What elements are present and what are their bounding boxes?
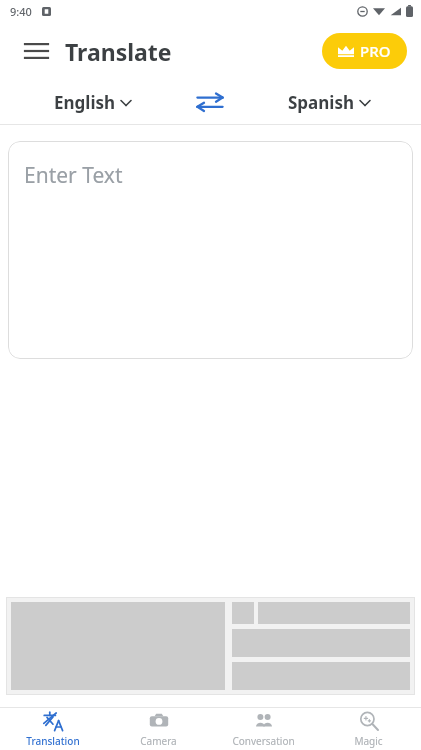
staticText: English — [54, 91, 116, 114]
button[interactable]: Magic — [316, 708, 421, 750]
staticText: Translation — [26, 734, 80, 748]
staticText: Spanish — [288, 91, 355, 114]
staticText: Enter Text — [24, 161, 123, 190]
button[interactable]: Menu — [14, 29, 58, 73]
button[interactable]: Spanish — [282, 87, 376, 118]
staticText: 9:40 — [10, 4, 32, 19]
button[interactable]: Translation — [0, 708, 106, 750]
button[interactable]: Advertisement — [6, 597, 415, 695]
button[interactable]: Swap languages — [184, 80, 236, 124]
staticText: Translate — [65, 36, 172, 67]
staticText: PRO — [360, 41, 391, 61]
button[interactable]: English — [48, 87, 137, 118]
staticText: Camera — [140, 734, 177, 748]
button[interactable]: PRO — [322, 33, 407, 69]
button[interactable]: Conversation — [211, 708, 316, 750]
staticText: Conversation — [232, 734, 295, 748]
button[interactable]: Enter Text — [8, 141, 413, 359]
button[interactable]: Camera — [106, 708, 211, 750]
staticText: Magic — [354, 734, 383, 748]
